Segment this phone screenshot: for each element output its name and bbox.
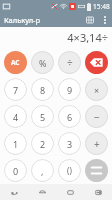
button[interactable]: 5 [31,105,54,128]
button[interactable]: 0 [4,159,27,182]
staticText: + [94,137,100,151]
button[interactable]: Recents [56,184,84,200]
staticText: 2 [40,138,46,150]
button[interactable]: 2 [31,132,54,155]
staticText: 9 [67,84,73,96]
button[interactable]: + [85,132,108,155]
button[interactable]: () [58,159,81,182]
staticText: 1 [13,138,19,150]
button[interactable]: × [85,78,108,101]
staticText: 0 [13,165,19,177]
staticText: 8 [40,84,46,96]
button[interactable]: , [31,159,54,182]
button[interactable]: − [85,105,108,128]
staticText: − [94,110,100,124]
button[interactable]: 6 [58,105,81,128]
button[interactable]: 3 [58,132,81,155]
staticText: 6 [67,111,73,123]
button[interactable]: 4 [4,105,27,128]
staticText: Калькул-р [4,15,41,25]
button[interactable]: % [31,51,54,74]
staticText: % [39,57,47,69]
staticText: 4 [13,111,19,123]
staticText: 15:48 [93,2,110,11]
staticText: 4×3,14÷ [67,30,108,45]
button[interactable]: Equals [85,159,108,182]
button[interactable]: 7 [4,78,27,101]
staticText: 5 [40,111,46,123]
button[interactable]: 1 [4,132,27,155]
button[interactable]: Scientific keypad [82,12,97,27]
button[interactable]: Screenshot [84,184,112,200]
staticText: 7 [13,84,19,96]
button[interactable]: Back [0,184,28,200]
staticText: , [41,165,44,177]
button[interactable]: 9 [58,78,81,101]
staticText: × [94,84,100,96]
staticText: () [67,165,72,176]
button[interactable]: Home [28,184,56,200]
button[interactable]: More options [97,12,112,27]
staticText: ÷ [67,56,73,70]
staticText: 3 [67,138,73,150]
button[interactable]: ÷ [58,51,81,74]
button[interactable]: Backspace [85,51,108,74]
staticText: AC [11,58,20,67]
button[interactable]: AC [4,51,27,74]
button[interactable]: 8 [31,78,54,101]
